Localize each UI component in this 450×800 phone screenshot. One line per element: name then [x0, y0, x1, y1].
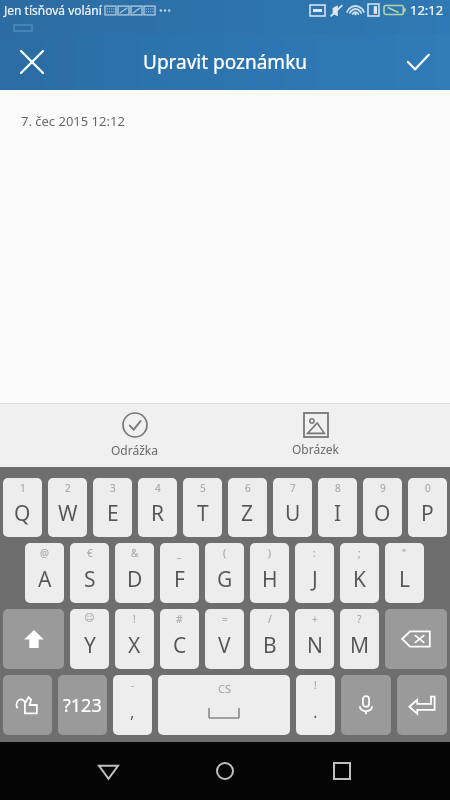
- button[interactable]: _: [160, 543, 199, 603]
- staticText: Jen tísňová volání: [4, 2, 102, 18]
- button[interactable]: Psaní tahem: [3, 675, 52, 735]
- staticText: @: [40, 546, 49, 560]
- button[interactable]: 7: [273, 478, 312, 537]
- button[interactable]: ;: [340, 543, 379, 603]
- button[interactable]: Shift: [3, 609, 64, 669]
- button[interactable]: ☺: [70, 609, 109, 669]
- staticText: W: [58, 499, 78, 528]
- button[interactable]: !: [115, 609, 154, 669]
- button[interactable]: 7. čec 2015 12:12: [0, 90, 450, 403]
- staticText: :: [313, 546, 316, 560]
- button[interactable]: 5: [183, 478, 222, 537]
- button[interactable]: ?: [340, 609, 379, 669]
- staticText: M: [350, 631, 370, 660]
- staticText: X: [128, 631, 141, 660]
- button[interactable]: Domů: [197, 743, 253, 799]
- button[interactable]: Enter: [397, 675, 447, 735]
- staticText: N: [307, 631, 323, 660]
- staticText: ,: [130, 700, 135, 723]
- button[interactable]: &: [115, 543, 154, 603]
- button[interactable]: /: [250, 609, 289, 669]
- staticText: +: [312, 612, 318, 626]
- button[interactable]: 3: [93, 478, 132, 537]
- staticText: R: [151, 499, 165, 528]
- button[interactable]: Smazat: [385, 609, 447, 669]
- staticText: ): [268, 546, 271, 560]
- staticText: 2: [65, 481, 71, 495]
- staticText: H: [262, 565, 278, 594]
- staticText: L: [399, 565, 411, 594]
- staticText: J: [312, 565, 318, 594]
- staticText: D: [127, 565, 143, 594]
- button[interactable]: Uložit: [394, 38, 442, 86]
- staticText: 1: [20, 481, 26, 495]
- staticText: 3: [110, 481, 116, 495]
- staticText: (: [223, 546, 226, 560]
- button[interactable]: Zavřít: [8, 38, 56, 86]
- button[interactable]: Mezerník: [158, 675, 290, 735]
- button[interactable]: 0: [408, 478, 447, 537]
- staticText: Upravit poznámku: [143, 49, 308, 75]
- button[interactable]: Zpět: [80, 743, 136, 799]
- button[interactable]: 1: [3, 478, 42, 537]
- button[interactable]: 2: [48, 478, 87, 537]
- staticText: #: [176, 612, 183, 626]
- button[interactable]: Odrážka: [97, 406, 172, 464]
- staticText: .: [313, 700, 318, 723]
- button[interactable]: 6: [228, 478, 267, 537]
- button[interactable]: !: [296, 675, 335, 735]
- staticText: A: [38, 565, 52, 594]
- button[interactable]: ): [250, 543, 289, 603]
- button[interactable]: +: [295, 609, 334, 669]
- staticText: Q: [14, 499, 31, 528]
- staticText: C: [173, 631, 187, 660]
- button[interactable]: 4: [138, 478, 177, 537]
- staticText: ?123: [63, 693, 102, 718]
- staticText: 5: [200, 481, 206, 495]
- staticText: P: [421, 499, 434, 528]
- button[interactable]: -: [113, 675, 152, 735]
- staticText: =: [222, 612, 228, 626]
- staticText: Z: [241, 499, 254, 528]
- button[interactable]: @: [25, 543, 64, 603]
- staticText: G: [217, 565, 233, 594]
- staticText: S: [84, 565, 96, 594]
- button[interactable]: :: [295, 543, 334, 603]
- staticText: CS: [218, 681, 231, 696]
- staticText: ;: [358, 546, 361, 560]
- button[interactable]: #: [160, 609, 199, 669]
- staticText: Odrážka: [111, 442, 158, 458]
- button[interactable]: €: [70, 543, 109, 603]
- staticText: B: [263, 631, 277, 660]
- staticText: ?: [357, 612, 362, 626]
- button[interactable]: Přehled: [314, 743, 370, 799]
- button[interactable]: (: [205, 543, 244, 603]
- staticText: O: [374, 499, 391, 528]
- staticText: Obrázek: [292, 441, 340, 457]
- button[interactable]: 9: [363, 478, 402, 537]
- button[interactable]: ?123: [58, 675, 107, 735]
- staticText: F: [174, 565, 185, 594]
- staticText: 4: [155, 481, 161, 495]
- staticText: 8: [335, 481, 341, 495]
- staticText: !: [133, 612, 136, 626]
- staticText: 9: [380, 481, 386, 495]
- staticText: V: [218, 631, 231, 660]
- staticText: 7: [290, 481, 296, 495]
- staticText: &: [131, 546, 139, 560]
- button[interactable]: 8: [318, 478, 357, 537]
- staticText: U: [285, 499, 301, 528]
- staticText: 7. čec 2015 12:12: [21, 112, 125, 130]
- staticText: 6: [245, 481, 251, 495]
- staticText: _: [177, 546, 182, 560]
- button[interactable]: Obrázek: [278, 407, 354, 463]
- staticText: 12:12: [410, 1, 444, 19]
- staticText: ": [402, 546, 407, 560]
- button[interactable]: ": [385, 543, 424, 603]
- staticText: E: [107, 499, 119, 528]
- button[interactable]: =: [205, 609, 244, 669]
- staticText: €: [87, 546, 93, 560]
- staticText: ☺: [84, 612, 95, 624]
- staticText: Y: [84, 631, 96, 660]
- button[interactable]: Hlasový vstup: [341, 675, 391, 735]
